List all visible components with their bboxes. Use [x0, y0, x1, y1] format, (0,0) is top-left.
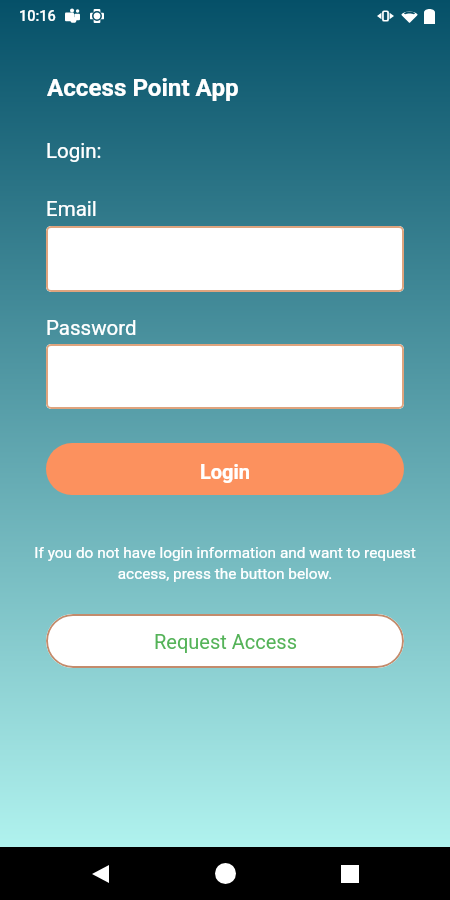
staticText: 10:16: [19, 8, 56, 25]
staticText: Login:: [46, 139, 102, 163]
button[interactable]: [46, 344, 404, 409]
staticText: Request Access: [154, 630, 297, 653]
staticText: Access Point App: [47, 74, 239, 102]
button[interactable]: Home: [183, 847, 267, 900]
staticText: Password: [46, 316, 137, 340]
button[interactable]: [46, 226, 404, 292]
button[interactable]: Back: [58, 847, 142, 900]
staticText: Login: [200, 460, 251, 483]
staticText: If you do not have login information and…: [30, 544, 420, 583]
button[interactable]: Login: [46, 443, 404, 495]
button[interactable]: Request Access: [46, 614, 404, 668]
staticText: Email: [46, 197, 97, 221]
button[interactable]: Recent apps: [308, 847, 392, 900]
